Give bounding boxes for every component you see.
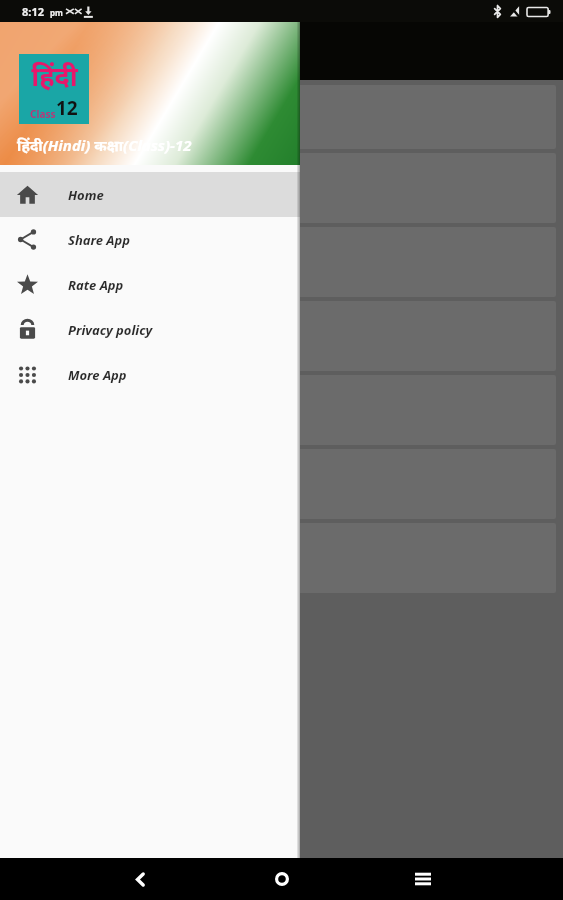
staticText: Rate App (68, 276, 124, 294)
staticText: हिंदी (31, 57, 78, 94)
button[interactable]: Back (116, 858, 164, 900)
staticText: Privacy policy (68, 321, 153, 339)
staticText: Class (30, 107, 56, 121)
button[interactable] (10, 523, 556, 593)
button[interactable]: More App (0, 352, 300, 397)
staticText: Share App (68, 231, 130, 249)
button[interactable] (10, 301, 556, 371)
button[interactable]: Rate App (0, 262, 300, 307)
button[interactable] (10, 227, 556, 297)
staticText: Home (68, 186, 104, 204)
button[interactable] (10, 449, 556, 519)
button[interactable]: Home (258, 858, 306, 900)
staticText: pm (50, 7, 63, 18)
button[interactable]: Privacy policy (0, 307, 300, 352)
staticText: 8:12 (22, 4, 44, 19)
staticText: हिंदी(Hindi) कक्षा(Class)-12 (17, 135, 192, 155)
button[interactable]: Recent apps (399, 858, 447, 900)
button[interactable] (10, 85, 556, 149)
button[interactable]: माध्यम) (10, 375, 556, 445)
staticText: 12 (56, 95, 78, 121)
staticText: More App (68, 366, 127, 384)
button[interactable]: Home (0, 172, 300, 217)
button[interactable]: Share App (0, 217, 300, 262)
button[interactable] (10, 153, 556, 223)
